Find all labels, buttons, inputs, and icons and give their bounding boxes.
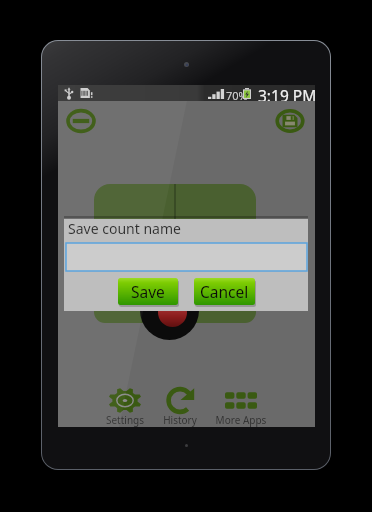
button[interactable]: Cancel xyxy=(194,278,255,305)
staticText: Save xyxy=(131,281,165,302)
staticText: Save count name xyxy=(68,219,181,238)
button[interactable] xyxy=(176,184,256,323)
staticText: History xyxy=(151,413,209,427)
button[interactable]: Save count xyxy=(273,106,307,136)
staticText: Cancel xyxy=(200,281,249,302)
button[interactable]: History xyxy=(151,386,209,425)
button[interactable]: Settings xyxy=(96,386,154,425)
staticText: More Apps xyxy=(212,413,270,427)
staticText: 3:19 PM xyxy=(258,85,317,101)
button[interactable]: More Apps xyxy=(212,386,270,425)
button[interactable]: Count xyxy=(140,281,199,340)
button[interactable] xyxy=(66,243,307,271)
staticText: Settings xyxy=(96,413,154,427)
button[interactable]: Save xyxy=(118,278,178,305)
staticText: 70% xyxy=(226,88,248,103)
button[interactable]: Reset count xyxy=(64,106,98,136)
button[interactable] xyxy=(94,184,174,323)
